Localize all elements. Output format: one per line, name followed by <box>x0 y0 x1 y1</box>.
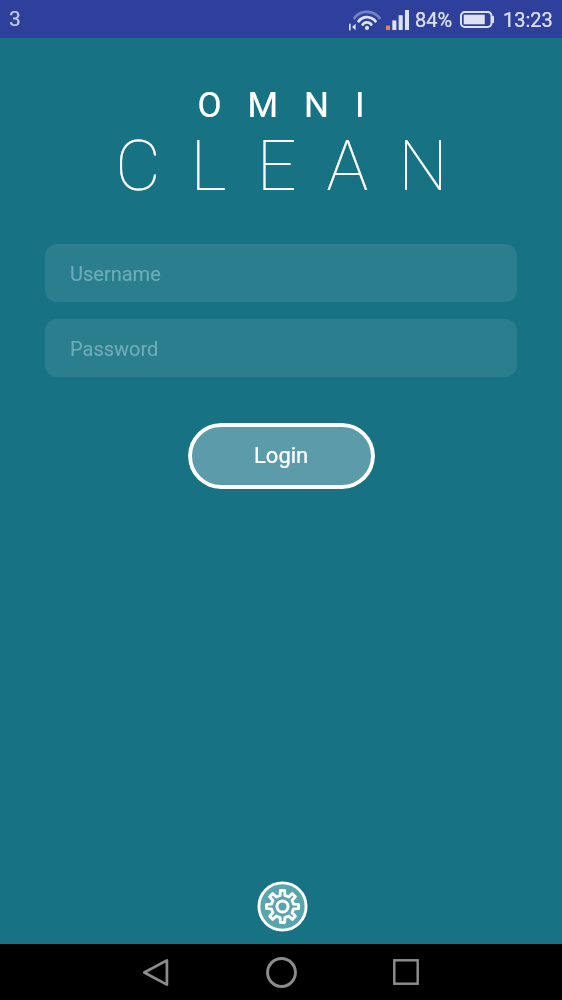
button[interactable]: Recents <box>378 944 434 1000</box>
staticText: Login <box>254 443 309 469</box>
staticText: 84% <box>415 8 453 31</box>
staticText: CLEAN <box>115 125 478 207</box>
staticText: OMNI <box>197 85 391 126</box>
button[interactable]: Password <box>45 319 517 377</box>
staticText: 13:23 <box>503 8 553 31</box>
button[interactable]: Username <box>45 244 517 302</box>
staticText: Username <box>70 262 161 285</box>
staticText: 3 <box>9 7 21 32</box>
button[interactable]: Back <box>128 944 184 1000</box>
staticText: Password <box>70 337 159 360</box>
button[interactable]: Settings <box>256 880 309 933</box>
button[interactable]: Home <box>253 944 309 1000</box>
button[interactable]: Login <box>188 423 375 489</box>
